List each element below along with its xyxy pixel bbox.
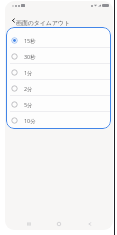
button[interactable]: 5分 [6, 96, 111, 112]
button[interactable]: Back [83, 218, 97, 230]
staticText: 10分 [24, 117, 36, 124]
button[interactable]: 30秒 [6, 48, 111, 64]
button[interactable]: 10分 [6, 112, 111, 128]
button[interactable]: Home [52, 218, 66, 230]
button[interactable]: 1分 [6, 64, 111, 80]
staticText: 30秒 [24, 53, 36, 60]
button[interactable]: Recents [22, 218, 36, 230]
staticText: 1分 [24, 69, 33, 76]
button[interactable]: 15秒 [6, 32, 111, 48]
staticText: 5分 [24, 101, 33, 108]
button[interactable]: Back [7, 14, 19, 26]
button[interactable]: 2分 [6, 80, 111, 96]
staticText: 15秒 [24, 37, 36, 44]
staticText: 画面のタイムアウト [16, 19, 70, 26]
staticText: 2分 [24, 85, 33, 92]
